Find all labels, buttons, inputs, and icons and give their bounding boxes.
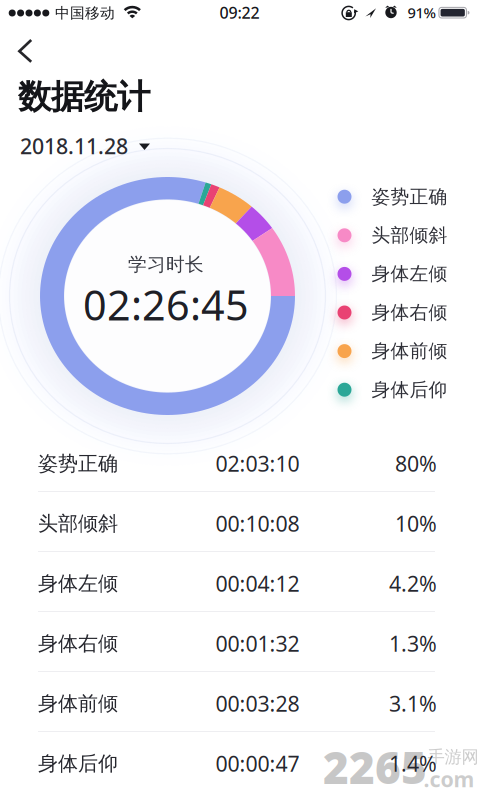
staticText: 00:00:47 [215, 749, 299, 778]
staticText: 头部倾斜 [371, 224, 447, 247]
staticText: 80% [395, 449, 437, 478]
staticText: 手游网 [427, 746, 478, 768]
staticText: 1.4% [389, 749, 437, 778]
button[interactable]: Back [0, 0, 44, 44]
staticText: 02:03:10 [215, 449, 299, 478]
staticText: 1.3% [389, 629, 437, 658]
staticText: 4.2% [389, 569, 437, 598]
staticText: 02:26:45 [83, 277, 249, 332]
staticText: 身体右倾 [371, 301, 447, 324]
staticText: 身体前倾 [371, 340, 447, 362]
staticText: 姿势正确 [38, 451, 118, 476]
staticText: 身体后仰 [38, 751, 118, 776]
staticText: 身体左倾 [38, 571, 118, 596]
staticText: 00:10:08 [215, 509, 299, 538]
staticText: 91% [407, 3, 435, 22]
staticText: 3.1% [389, 689, 437, 718]
staticText: 姿势正确 [371, 185, 447, 208]
staticText: 身体后仰 [371, 378, 447, 401]
staticText: 00:01:32 [215, 629, 299, 658]
staticText: 中国移动 [55, 4, 115, 22]
staticText: 身体左倾 [371, 262, 447, 285]
staticText: 身体右倾 [38, 631, 118, 656]
staticText: 2265 [323, 738, 427, 796]
staticText: 09:22 [219, 2, 259, 23]
button[interactable]: 2018.11.28 [20, 132, 154, 160]
staticText: 学习时长 [128, 253, 204, 276]
staticText: 00:04:12 [215, 569, 299, 598]
staticText: .com [423, 765, 474, 793]
staticText: 2018.11.28 [20, 132, 128, 160]
staticText: 10% [395, 509, 437, 538]
staticText: 00:03:28 [215, 689, 299, 718]
staticText: 头部倾斜 [38, 511, 118, 536]
staticText: 身体前倾 [38, 691, 118, 716]
staticText: 数据统计 [18, 76, 150, 117]
